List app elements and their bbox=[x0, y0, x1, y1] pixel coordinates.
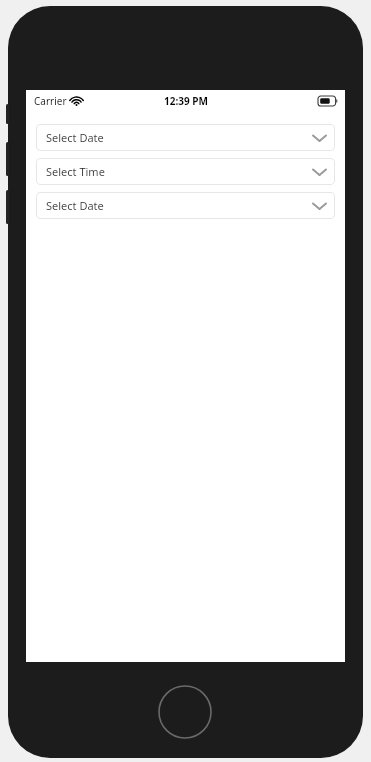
staticText: 12:39 PM bbox=[164, 94, 208, 108]
button[interactable]: Home bbox=[158, 685, 212, 739]
staticText: Select Date bbox=[46, 130, 104, 145]
button[interactable]: Select Time bbox=[36, 158, 335, 185]
button[interactable]: Select Date bbox=[36, 192, 335, 219]
staticText: Select Date bbox=[46, 198, 104, 213]
button[interactable]: Select Date bbox=[36, 124, 335, 151]
staticText: Carrier bbox=[34, 94, 67, 108]
staticText: Select Time bbox=[46, 164, 105, 179]
